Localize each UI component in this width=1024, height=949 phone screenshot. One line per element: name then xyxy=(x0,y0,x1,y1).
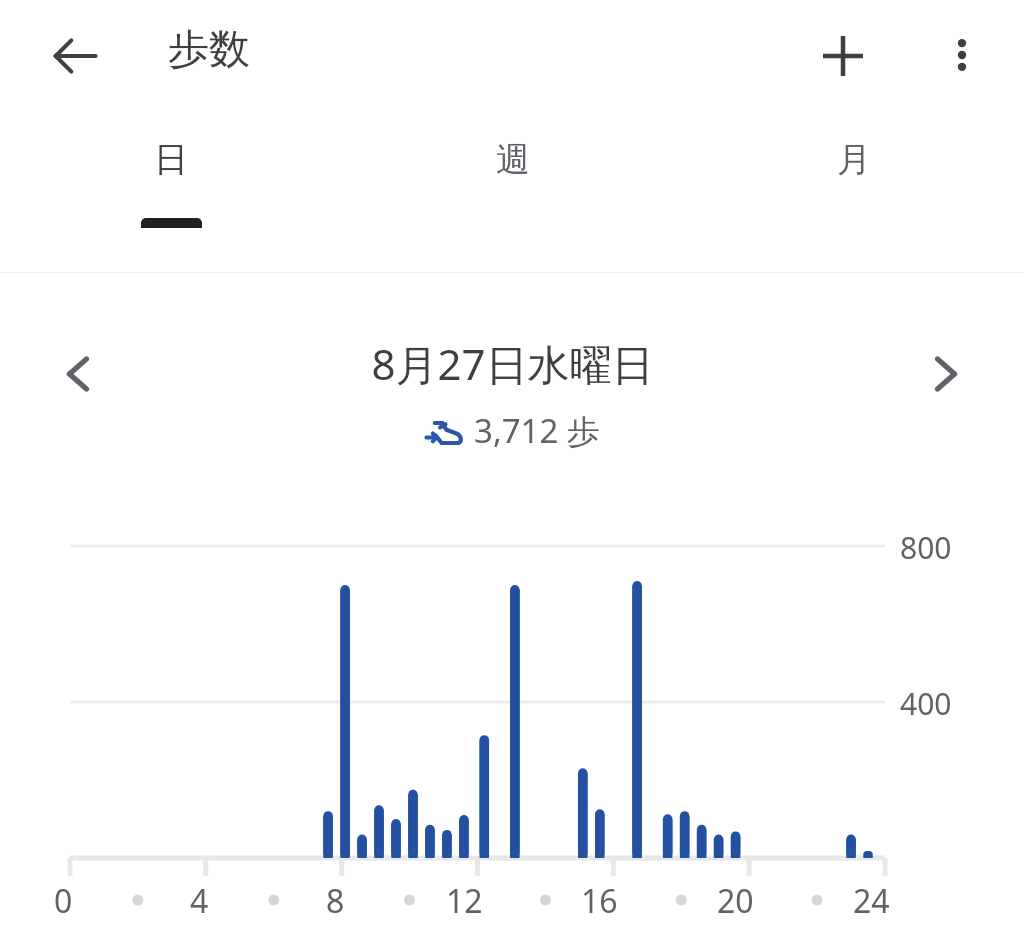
staticText: 20 xyxy=(717,879,754,923)
staticText: 12 xyxy=(446,879,483,923)
button[interactable]: 週 xyxy=(342,110,683,272)
staticText: 24 xyxy=(853,879,890,923)
staticText: 4 xyxy=(190,879,209,923)
staticText: 800 xyxy=(900,527,952,568)
button[interactable]: 月 xyxy=(683,110,1024,272)
button[interactable]: Add xyxy=(810,23,876,89)
staticText: 16 xyxy=(581,879,618,923)
button[interactable]: Next day xyxy=(912,341,978,407)
button[interactable]: More options xyxy=(930,23,994,87)
staticText: 月 xyxy=(837,138,871,181)
button[interactable]: Previous day xyxy=(46,341,112,407)
staticText: 8月27日水曜日 xyxy=(371,335,654,392)
button[interactable]: Back xyxy=(44,25,106,87)
staticText: 週 xyxy=(496,138,530,181)
staticText: 日 xyxy=(154,138,188,181)
button[interactable]: 日 xyxy=(0,110,342,272)
staticText: 400 xyxy=(900,683,952,724)
staticText: 0 xyxy=(54,879,73,923)
staticText: 3,712 歩 xyxy=(474,408,600,453)
staticText: 歩数 xyxy=(168,24,250,76)
staticText: 8 xyxy=(326,879,345,923)
